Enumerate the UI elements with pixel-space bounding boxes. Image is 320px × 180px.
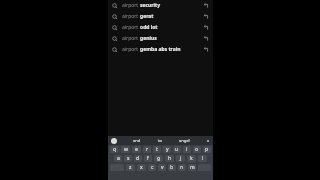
staticText: d xyxy=(136,155,140,162)
other: Insert xyxy=(203,25,209,31)
staticText: a xyxy=(117,155,120,162)
button[interactable]: airport xyxy=(108,44,213,55)
button[interactable]: m xyxy=(188,164,196,171)
staticText: z xyxy=(129,164,132,171)
staticText: t xyxy=(156,146,158,153)
staticText: s xyxy=(127,155,130,162)
button[interactable]: o xyxy=(193,146,201,153)
staticText: and xyxy=(133,138,141,143)
staticText: c xyxy=(151,164,154,171)
staticText: r xyxy=(146,146,149,153)
staticText: u xyxy=(175,146,179,153)
button[interactable]: d xyxy=(134,155,142,162)
button[interactable]: n xyxy=(178,164,186,171)
button[interactable]: w xyxy=(121,146,130,153)
button[interactable]: airport xyxy=(108,0,213,11)
button[interactable]: e xyxy=(132,146,141,153)
button[interactable]: l xyxy=(198,155,207,162)
staticText: w xyxy=(124,146,128,153)
button[interactable]: f xyxy=(144,155,152,162)
button[interactable]: p xyxy=(203,146,211,153)
staticText: b xyxy=(170,164,174,171)
other: Insert xyxy=(203,36,209,42)
staticText: n xyxy=(180,164,184,171)
staticText: q xyxy=(113,146,117,153)
button[interactable]: c xyxy=(148,164,156,171)
staticText: gerat xyxy=(140,13,154,20)
button[interactable]: j xyxy=(176,155,185,162)
button[interactable]: airport xyxy=(108,33,213,44)
button[interactable]: x xyxy=(137,164,146,171)
staticText: p xyxy=(205,146,209,153)
staticText: e xyxy=(135,146,138,153)
other: Insert xyxy=(203,14,209,20)
staticText: v xyxy=(161,164,164,171)
staticText: y xyxy=(166,146,169,153)
staticText: to xyxy=(158,138,162,143)
button[interactable]: u xyxy=(173,146,181,153)
staticText: airport xyxy=(122,35,140,42)
button[interactable]: b xyxy=(168,164,176,171)
staticText: security xyxy=(140,2,161,9)
staticText: airport xyxy=(122,24,140,31)
staticText: g xyxy=(157,155,161,162)
staticText: genius xyxy=(140,35,157,42)
staticText: l xyxy=(202,155,204,162)
button[interactable]: t xyxy=(153,146,161,153)
button[interactable]: z xyxy=(126,164,135,171)
staticText: j xyxy=(180,155,182,162)
button[interactable]: s xyxy=(124,155,132,162)
button[interactable]: r xyxy=(143,146,151,153)
staticText: v xyxy=(207,138,210,143)
button[interactable]: airport xyxy=(108,22,213,33)
staticText: x xyxy=(140,164,143,171)
staticText: f xyxy=(147,155,149,162)
other: Insert xyxy=(203,3,209,9)
staticText: airport xyxy=(122,2,140,9)
button[interactable]: y xyxy=(163,146,171,153)
button[interactable]: a xyxy=(114,155,122,162)
button[interactable]: i xyxy=(183,146,191,153)
other: Voice xyxy=(111,138,117,144)
staticText: odd lot xyxy=(140,24,158,31)
button[interactable]: v xyxy=(158,164,166,171)
button[interactable]: q xyxy=(110,146,119,153)
staticText: airport xyxy=(122,13,140,20)
staticText: airport xyxy=(122,46,140,53)
staticText: angel xyxy=(179,138,190,143)
staticText: h xyxy=(168,155,172,162)
staticText: gemba abs train xyxy=(140,46,181,53)
staticText: i xyxy=(186,146,188,153)
other: Insert xyxy=(203,47,209,53)
button[interactable]: airport xyxy=(108,11,213,22)
staticText: m xyxy=(190,164,195,171)
staticText: o xyxy=(195,146,199,153)
button[interactable]: h xyxy=(165,155,174,162)
button[interactable]: g xyxy=(154,155,163,162)
button[interactable]: k xyxy=(187,155,196,162)
staticText: k xyxy=(190,155,193,162)
